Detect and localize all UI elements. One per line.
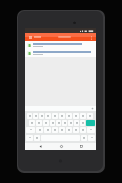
button[interactable]: Backspace (87, 127, 95, 133)
button[interactable]: Menu (27, 34, 33, 40)
button[interactable]: Search (58, 36, 71, 38)
button[interactable]: Recent apps (75, 143, 87, 150)
button[interactable] (27, 113, 32, 119)
button[interactable] (25, 41, 96, 49)
button[interactable] (34, 135, 40, 141)
button[interactable] (81, 135, 87, 141)
button[interactable]: Shift (26, 127, 35, 133)
button[interactable] (80, 120, 85, 126)
button[interactable]: Emoji (88, 135, 95, 141)
button[interactable]: Keyboard settings (91, 107, 94, 110)
button[interactable] (59, 113, 65, 119)
button[interactable] (73, 127, 79, 133)
button[interactable]: Back (34, 143, 46, 150)
button[interactable] (52, 127, 58, 133)
button[interactable] (29, 120, 35, 126)
button[interactable] (56, 120, 61, 126)
button[interactable] (33, 113, 38, 119)
button[interactable] (66, 127, 72, 133)
button[interactable] (68, 120, 73, 126)
button[interactable] (36, 127, 43, 133)
button[interactable] (52, 113, 58, 119)
button[interactable]: Enter (86, 120, 95, 126)
button[interactable]: Home (55, 143, 67, 150)
button[interactable] (39, 113, 44, 119)
button[interactable] (87, 113, 93, 119)
button[interactable]: More options (88, 34, 94, 40)
button[interactable] (50, 120, 55, 126)
button[interactable] (59, 127, 65, 133)
button[interactable] (80, 113, 86, 119)
button[interactable] (74, 120, 79, 126)
button[interactable] (66, 113, 72, 119)
button[interactable] (43, 120, 49, 126)
button[interactable] (62, 120, 67, 126)
button[interactable] (44, 127, 51, 133)
button[interactable] (36, 120, 42, 126)
button[interactable] (80, 127, 86, 133)
button[interactable]: Symbols (26, 135, 33, 141)
button[interactable] (45, 113, 51, 119)
button[interactable] (73, 113, 79, 119)
button[interactable] (25, 49, 96, 57)
